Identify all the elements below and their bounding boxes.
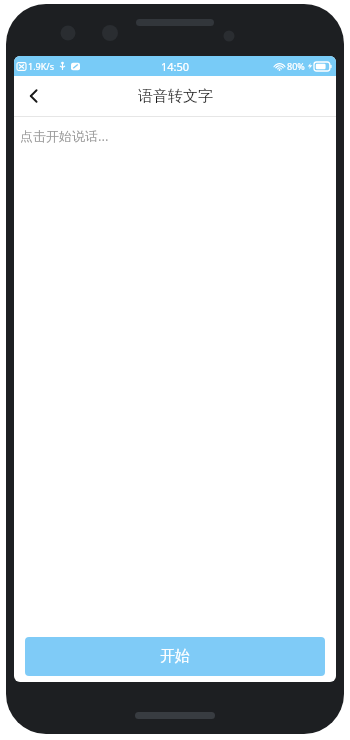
staticText: 点击开始说话... (20, 127, 109, 145)
staticText: 14:50 (161, 59, 190, 74)
staticText: 80% (287, 60, 305, 72)
staticText: 语音转文字 (138, 87, 213, 106)
button[interactable]: Back (14, 76, 54, 116)
button[interactable]: 开始 (25, 637, 325, 676)
staticText: 开始 (160, 647, 190, 666)
staticText: 1.9K/s (28, 60, 54, 72)
